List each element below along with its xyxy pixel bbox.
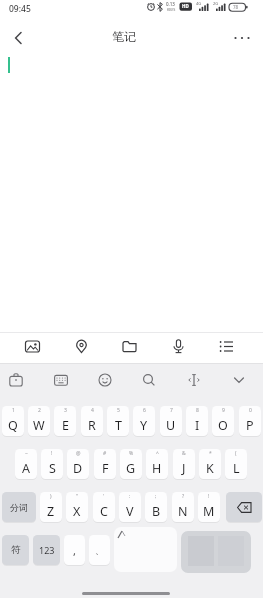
button[interactable]: 123 <box>33 535 60 565</box>
staticText: 8 <box>196 407 199 414</box>
staticText: ^ <box>156 450 159 457</box>
staticText: : <box>129 493 131 500</box>
staticText: R <box>88 417 96 434</box>
staticText: ( <box>235 450 237 457</box>
staticText: I <box>195 417 200 434</box>
button[interactable] <box>48 368 74 392</box>
staticText: Z <box>47 503 55 520</box>
staticText: D <box>73 460 83 477</box>
staticText: % <box>129 450 134 457</box>
staticText: 4 <box>91 407 94 414</box>
staticText: 3 <box>64 407 67 414</box>
button[interactable]: # <box>94 449 116 479</box>
button[interactable]: ~ <box>15 449 37 479</box>
button[interactable]: 2 <box>28 406 50 436</box>
staticText: W <box>33 417 45 434</box>
staticText: 1 <box>12 407 15 414</box>
button[interactable]: 0 <box>239 406 261 436</box>
staticText: N <box>178 503 188 520</box>
staticText: 6 <box>143 407 146 414</box>
staticText: G <box>126 460 136 477</box>
button[interactable]: 5 <box>107 406 129 436</box>
button[interactable]: 1 <box>2 406 24 436</box>
button[interactable]: ! <box>41 449 63 479</box>
button[interactable]: & <box>173 449 195 479</box>
staticText: 123 <box>39 544 55 556</box>
staticText: B <box>152 503 161 520</box>
button[interactable]: ) <box>40 492 62 522</box>
button[interactable]: 8 <box>186 406 208 436</box>
staticText: ; <box>155 493 157 500</box>
staticText: 4G <box>196 1 202 6</box>
button[interactable]: : <box>119 492 141 522</box>
button[interactable]: @ <box>67 449 89 479</box>
button[interactable]: ? <box>172 492 194 522</box>
button[interactable] <box>4 27 32 49</box>
button[interactable] <box>226 492 262 522</box>
button[interactable] <box>181 368 207 392</box>
button[interactable] <box>136 368 162 392</box>
button[interactable]: 7 <box>160 406 182 436</box>
staticText: F <box>102 460 109 477</box>
button[interactable]: % <box>120 449 142 479</box>
staticText: J <box>182 460 186 477</box>
staticText: M <box>203 503 215 520</box>
staticText: X <box>73 503 81 520</box>
button[interactable] <box>164 334 192 358</box>
staticText: 78 <box>233 4 239 10</box>
button[interactable] <box>212 334 240 358</box>
button[interactable]: , <box>64 535 85 565</box>
staticText: V <box>126 503 134 520</box>
staticText: " <box>76 493 79 500</box>
button[interactable]: 3 <box>54 406 76 436</box>
button[interactable]: ; <box>145 492 167 522</box>
staticText: 分词 <box>10 502 28 513</box>
staticText: U <box>166 417 176 434</box>
button[interactable]: 4 <box>81 406 103 436</box>
button[interactable]: 符 <box>2 535 29 565</box>
staticText: 09:45 <box>9 3 31 15</box>
staticText: & <box>182 450 186 457</box>
staticText: L <box>233 460 240 477</box>
staticText: H <box>152 460 162 477</box>
staticText: 9 <box>222 407 225 414</box>
button[interactable] <box>92 368 118 392</box>
button[interactable]: ! <box>198 492 220 522</box>
button[interactable]: ^ <box>146 449 168 479</box>
staticText: KB/S <box>167 7 176 12</box>
staticText: ! <box>51 450 53 457</box>
staticText: 、 <box>95 545 104 556</box>
staticText: Q <box>8 417 18 434</box>
button[interactable]: 6 <box>133 406 155 436</box>
button[interactable] <box>3 368 29 392</box>
staticText: @ <box>76 450 81 457</box>
staticText: ~ <box>25 450 28 457</box>
staticText: Y <box>140 417 148 434</box>
staticText: 0.13 <box>166 1 175 7</box>
button[interactable] <box>18 334 46 358</box>
staticText: 7 <box>170 407 173 414</box>
button[interactable]: 分词 <box>2 492 36 522</box>
button[interactable]: " <box>66 492 88 522</box>
staticText: 符 <box>11 544 21 556</box>
button[interactable] <box>228 27 256 49</box>
staticText: ) <box>50 493 52 500</box>
staticText: A <box>22 460 30 477</box>
staticText: 0 <box>249 407 252 414</box>
staticText: K <box>206 460 214 477</box>
button[interactable] <box>115 334 143 358</box>
button[interactable]: 、 <box>89 535 110 565</box>
button[interactable] <box>226 368 252 392</box>
button[interactable]: 9 <box>212 406 234 436</box>
staticText: HD <box>182 3 189 9</box>
staticText: * <box>209 450 212 457</box>
staticText: # <box>103 450 107 457</box>
staticText: S <box>49 460 56 477</box>
button[interactable] <box>114 535 174 565</box>
staticText: ' <box>103 493 105 500</box>
button[interactable]: ' <box>93 492 115 522</box>
staticText: , <box>73 543 76 558</box>
button[interactable] <box>67 334 95 358</box>
button[interactable]: ( <box>225 449 247 479</box>
button[interactable]: * <box>199 449 221 479</box>
